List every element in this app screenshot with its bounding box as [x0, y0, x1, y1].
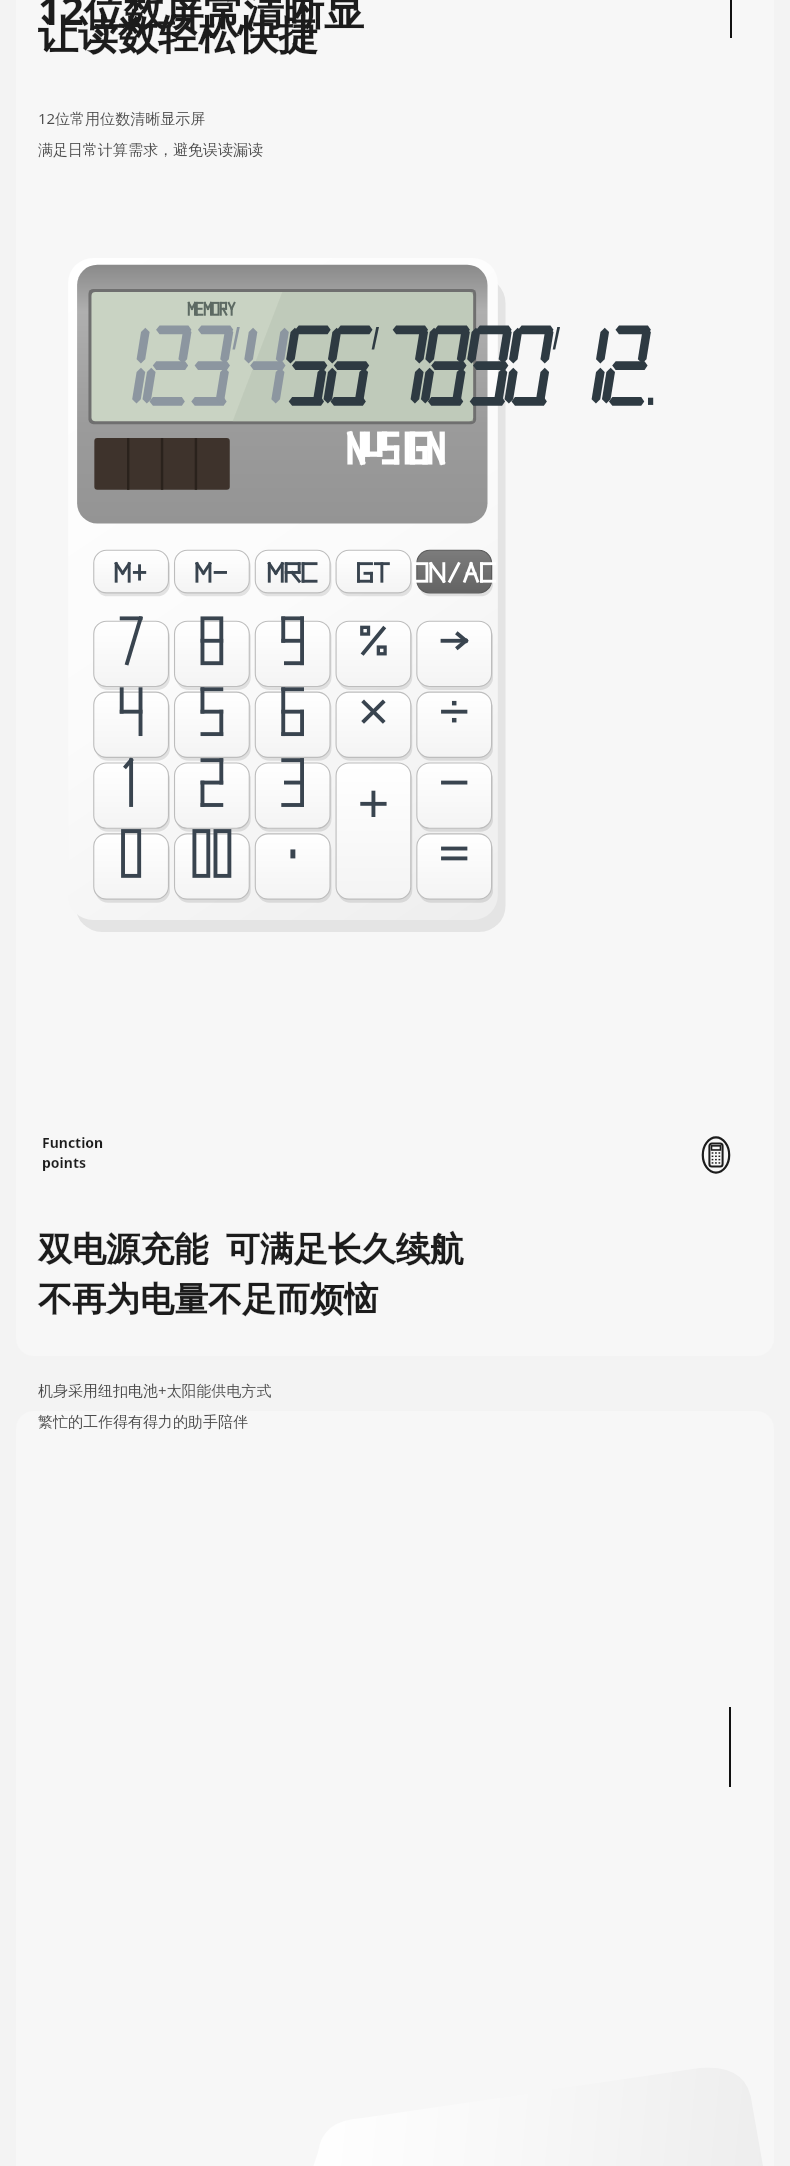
staticText: 双电源充能 可满足长久续航: [38, 1225, 464, 1271]
staticText: points: [42, 1153, 86, 1172]
staticText: 让读数轻松快捷: [38, 10, 318, 60]
staticText: 机身采用纽扣电池+太阳能供电方式: [38, 1380, 272, 1400]
staticText: 满足日常计算需求，避免误读漏读: [38, 141, 263, 160]
staticText: Function: [42, 1133, 104, 1152]
staticText: 12位数屏常清晰显: [38, 0, 364, 37]
staticText: 12位常用位数清晰显示屏: [38, 108, 206, 128]
button[interactable]: Calculator feature: [694, 1133, 738, 1177]
staticText: 繁忙的工作得有得力的助手陪伴: [38, 1413, 248, 1432]
staticText: 不再为电量不足而烦恼: [38, 1278, 378, 1321]
